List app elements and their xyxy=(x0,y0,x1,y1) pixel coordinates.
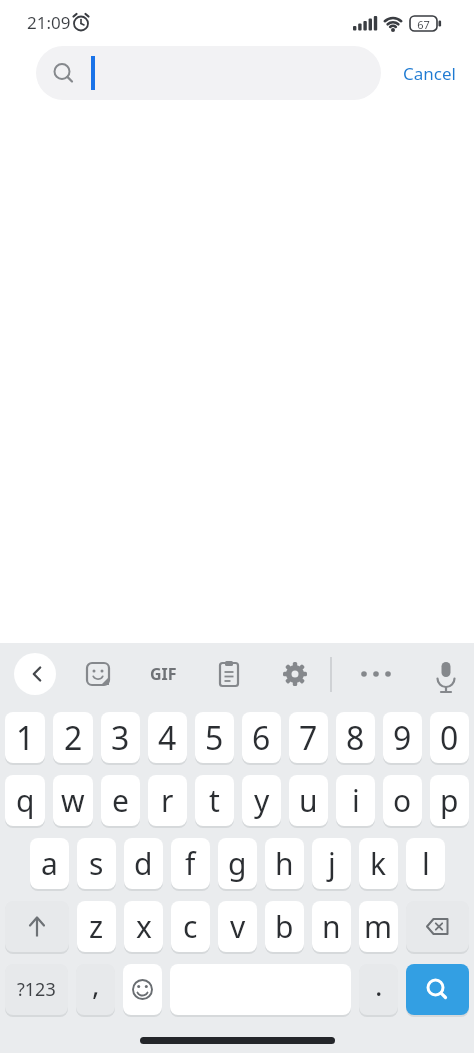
staticText: 0 xyxy=(440,716,459,760)
button[interactable]: g xyxy=(218,838,257,889)
button[interactable]: j xyxy=(312,838,351,889)
button[interactable]: ?123 xyxy=(5,964,68,1015)
staticText: f xyxy=(185,843,196,884)
staticText: . xyxy=(375,966,383,1004)
button[interactable] xyxy=(76,653,120,695)
staticText: 2 xyxy=(64,716,83,760)
button[interactable] xyxy=(123,964,162,1015)
button[interactable]: 1 xyxy=(5,712,45,763)
button[interactable] xyxy=(406,964,469,1015)
staticText: h xyxy=(275,843,294,884)
button[interactable]: 2 xyxy=(53,712,93,763)
button[interactable]: 5 xyxy=(195,712,234,763)
button[interactable]: q xyxy=(5,775,45,826)
staticText: z xyxy=(89,906,104,947)
staticText: n xyxy=(322,906,341,947)
staticText: 67 xyxy=(410,17,437,32)
button[interactable] xyxy=(273,653,317,695)
button[interactable] xyxy=(354,653,398,695)
staticText: GIF xyxy=(150,663,177,685)
button[interactable]: . xyxy=(359,964,398,1015)
staticText: 21:09 xyxy=(27,11,71,34)
staticText: x xyxy=(136,906,152,947)
staticText: u xyxy=(299,780,318,821)
button[interactable]: z xyxy=(77,901,116,952)
staticText: d xyxy=(134,843,153,884)
button[interactable]: 3 xyxy=(101,712,140,763)
staticText: 8 xyxy=(346,716,365,760)
staticText: r xyxy=(161,780,174,821)
button[interactable]: s xyxy=(77,838,116,889)
button[interactable] xyxy=(424,653,468,695)
button[interactable]: t xyxy=(195,775,234,826)
button[interactable]: GIF xyxy=(141,653,185,695)
staticText: 4 xyxy=(158,716,177,760)
staticText: v xyxy=(230,906,246,947)
staticText: p xyxy=(440,780,459,821)
button[interactable]: n xyxy=(312,901,351,952)
staticText: t xyxy=(209,780,220,821)
button[interactable]: 6 xyxy=(242,712,281,763)
staticText: k xyxy=(370,843,387,884)
staticText: q xyxy=(16,780,35,821)
staticText: l xyxy=(422,843,430,884)
staticText: e xyxy=(112,780,129,821)
button[interactable]: 0 xyxy=(430,712,469,763)
staticText: j xyxy=(328,843,336,884)
staticText: 3 xyxy=(111,716,130,760)
button[interactable]: r xyxy=(148,775,187,826)
staticText: m xyxy=(364,906,393,947)
staticText: c xyxy=(183,906,198,947)
button[interactable] xyxy=(5,901,69,952)
staticText: g xyxy=(228,843,247,884)
button[interactable]: c xyxy=(171,901,210,952)
staticText: s xyxy=(89,843,104,884)
button[interactable]: 8 xyxy=(336,712,375,763)
staticText: w xyxy=(61,780,85,821)
button[interactable]: k xyxy=(359,838,398,889)
staticText: ?123 xyxy=(17,977,56,1002)
button[interactable]: , xyxy=(76,964,115,1015)
button[interactable]: l xyxy=(406,838,445,889)
staticText: 7 xyxy=(299,716,318,760)
button[interactable] xyxy=(406,901,469,952)
staticText: y xyxy=(254,780,270,821)
button[interactable]: w xyxy=(53,775,93,826)
button[interactable]: e xyxy=(101,775,140,826)
button[interactable] xyxy=(36,46,381,100)
staticText: o xyxy=(393,780,412,821)
staticText: 6 xyxy=(252,716,271,760)
button[interactable]: m xyxy=(359,901,398,952)
button[interactable]: i xyxy=(336,775,375,826)
staticText: Cancel xyxy=(403,62,456,85)
staticText: a xyxy=(41,843,58,884)
button[interactable]: u xyxy=(289,775,328,826)
button[interactable] xyxy=(207,653,251,695)
staticText: 5 xyxy=(205,716,224,760)
staticText: 9 xyxy=(393,716,412,760)
button[interactable]: o xyxy=(383,775,422,826)
staticText: i xyxy=(352,780,360,821)
button[interactable]: 4 xyxy=(148,712,187,763)
button[interactable]: a xyxy=(30,838,69,889)
button[interactable]: 9 xyxy=(383,712,422,763)
button[interactable]: v xyxy=(218,901,257,952)
staticText: b xyxy=(275,906,294,947)
button[interactable]: 7 xyxy=(289,712,328,763)
button[interactable]: Cancel xyxy=(381,46,456,100)
staticText: , xyxy=(92,965,100,1003)
button[interactable]: f xyxy=(171,838,210,889)
button[interactable]: y xyxy=(242,775,281,826)
button[interactable]: h xyxy=(265,838,304,889)
button[interactable]: b xyxy=(265,901,304,952)
button[interactable]: d xyxy=(124,838,163,889)
button[interactable]: x xyxy=(124,901,163,952)
staticText: 1 xyxy=(16,716,35,760)
button[interactable]: p xyxy=(430,775,469,826)
button[interactable] xyxy=(14,653,56,695)
